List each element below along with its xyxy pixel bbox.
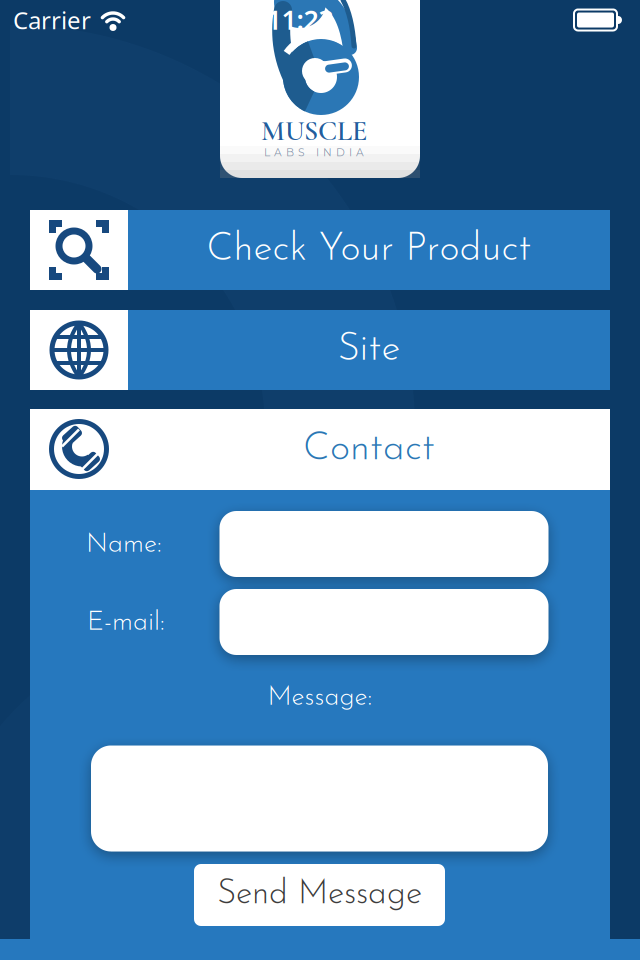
staticText: E-mail: [87, 610, 165, 636]
staticText: Message: [267, 685, 372, 711]
staticText: LABS INDIA [264, 146, 364, 159]
button[interactable]: Send Message [194, 864, 445, 926]
staticText: MUSCLE [261, 114, 367, 148]
button[interactable]: Contact [30, 409, 610, 490]
button[interactable]: Name [219, 511, 548, 577]
button[interactable]: Message [91, 745, 548, 851]
staticText: Carrier [13, 4, 91, 36]
button[interactable]: Check Your Product [30, 210, 610, 290]
staticText: Name: [86, 532, 162, 558]
staticText: Send Message [217, 878, 422, 912]
staticText: Check Your Product [206, 231, 531, 269]
staticText: Contact [303, 430, 435, 469]
staticText: 11:23 [266, 2, 333, 37]
button[interactable]: E-mail [219, 589, 548, 655]
button[interactable]: Site [30, 310, 610, 390]
staticText: Site [337, 331, 400, 369]
